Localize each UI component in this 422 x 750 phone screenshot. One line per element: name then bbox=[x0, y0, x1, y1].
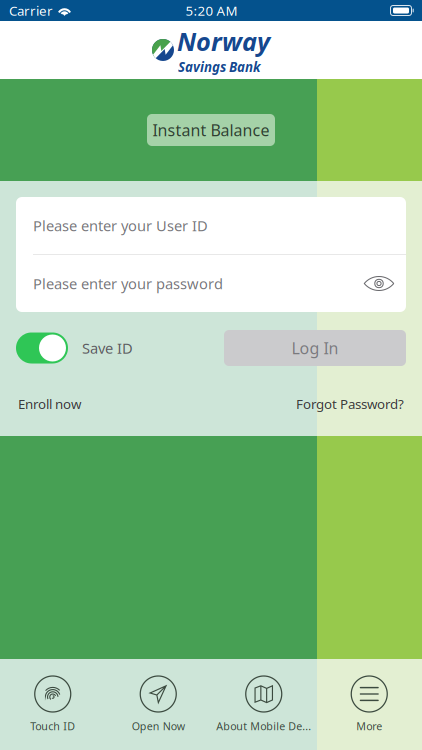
staticText: Forgot Password? bbox=[296, 395, 404, 413]
button[interactable]: Show password bbox=[363, 269, 395, 297]
button[interactable]: Instant Balance bbox=[147, 114, 275, 146]
button[interactable]: Touch ID bbox=[0, 659, 105, 750]
staticText: Save ID bbox=[82, 338, 133, 358]
button[interactable]: About Mobile De... bbox=[211, 659, 316, 750]
button[interactable]: Open Now bbox=[105, 659, 211, 750]
staticText: Norway bbox=[177, 24, 270, 58]
button[interactable]: Forgot Password? bbox=[296, 390, 404, 418]
staticText: Open Now bbox=[132, 719, 185, 733]
staticText: Enroll now bbox=[18, 395, 81, 413]
staticText: Please enter your password bbox=[33, 274, 223, 293]
button[interactable]: Save ID bbox=[16, 332, 133, 363]
staticText: More bbox=[356, 719, 382, 733]
staticText: Touch ID bbox=[30, 719, 75, 733]
staticText: Please enter your User ID bbox=[33, 216, 208, 235]
button[interactable]: More bbox=[316, 659, 422, 750]
staticText: Carrier bbox=[9, 2, 53, 19]
staticText: 5:20 AM bbox=[185, 2, 237, 19]
staticText: Instant Balance bbox=[152, 119, 269, 141]
staticText: About Mobile De... bbox=[216, 719, 311, 733]
staticText: Log In bbox=[291, 337, 338, 359]
button[interactable]: Enroll now bbox=[18, 390, 81, 418]
staticText: Savings Bank bbox=[178, 58, 261, 76]
button[interactable]: Log In bbox=[224, 330, 406, 366]
